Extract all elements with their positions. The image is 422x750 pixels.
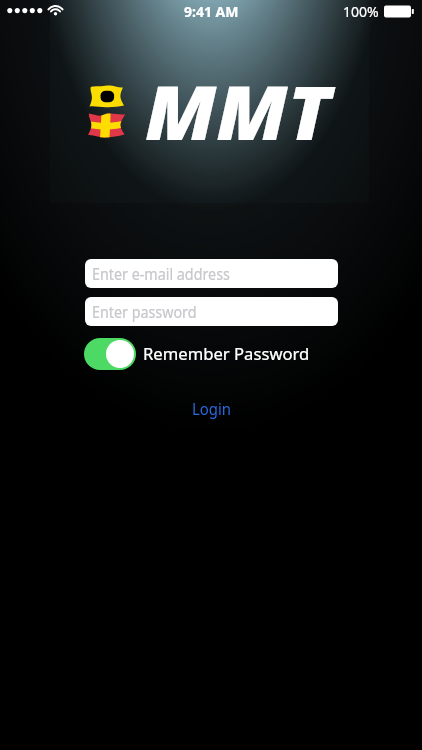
staticText: Enter e-mail address: [92, 263, 231, 285]
staticText: Remember Password: [143, 343, 309, 365]
button[interactable]: Enter e-mail address: [85, 259, 338, 288]
staticText: Enter password: [92, 301, 197, 323]
staticText: MMT: [145, 60, 332, 162]
button[interactable]: Remember password toggle: [84, 338, 136, 370]
staticText: 9:41 AM: [184, 2, 239, 21]
button[interactable]: Enter password: [85, 297, 338, 326]
button[interactable]: Login: [188, 396, 238, 422]
staticText: Login: [192, 398, 231, 420]
button[interactable]: Remember password toggle: [84, 338, 303, 370]
staticText: 100%: [343, 2, 379, 21]
